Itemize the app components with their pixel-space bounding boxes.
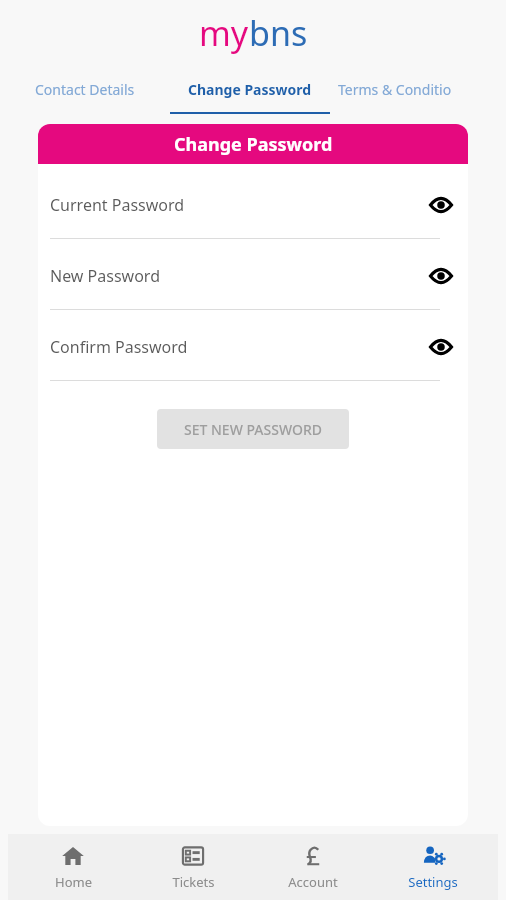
staticText: New Password <box>50 265 426 287</box>
staticText: Home <box>55 873 92 891</box>
staticText: bns <box>249 10 308 56</box>
button[interactable]: Contact Details <box>0 66 170 114</box>
staticText: my <box>199 10 249 56</box>
staticText: Terms & Conditio <box>338 80 452 99</box>
staticText: SET NEW PASSWORD <box>184 420 322 439</box>
staticText: Change Password <box>188 80 312 99</box>
button[interactable]: Change Password <box>170 66 330 114</box>
button[interactable]: Show password <box>426 332 456 362</box>
staticText: Change Password <box>174 132 333 157</box>
button[interactable]: Home <box>18 834 128 900</box>
button[interactable]: Show password <box>426 261 456 291</box>
staticText: Tickets <box>172 873 215 891</box>
staticText: Contact Details <box>35 80 135 99</box>
staticText: Current Password <box>50 194 426 216</box>
button[interactable]: Account <box>258 834 368 900</box>
staticText: Confirm Password <box>50 336 426 358</box>
button[interactable]: Show password <box>426 190 456 220</box>
button[interactable]: New Password <box>50 261 456 291</box>
button[interactable]: Settings <box>378 834 488 900</box>
button[interactable]: Current Password <box>50 190 456 220</box>
button[interactable]: Confirm Password <box>50 332 456 362</box>
button[interactable]: Terms & Conditio <box>330 66 506 114</box>
button[interactable]: Tickets <box>138 834 248 900</box>
staticText: Settings <box>408 873 458 891</box>
staticText: Account <box>288 873 338 891</box>
button[interactable]: SET NEW PASSWORD <box>157 409 349 449</box>
